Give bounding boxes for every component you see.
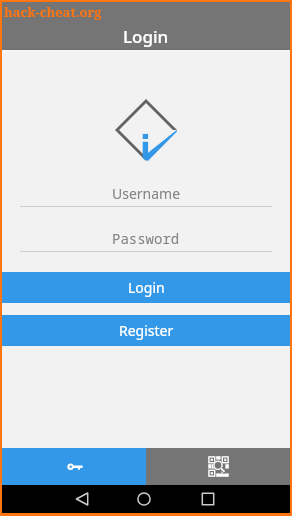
- button[interactable]: Home: [124, 485, 164, 513]
- staticText: Password: [112, 229, 180, 248]
- button[interactable]: Back: [62, 485, 102, 513]
- button[interactable]: Password: [20, 228, 272, 251]
- staticText: Username: [112, 184, 181, 203]
- button[interactable]: Recent apps: [188, 485, 228, 513]
- staticText: Login: [123, 25, 169, 48]
- button[interactable]: Login: [2, 272, 290, 303]
- button[interactable]: Register: [2, 315, 290, 346]
- staticText: hack-cheat.org: [4, 3, 102, 21]
- button[interactable]: Scan QR code: [146, 448, 290, 485]
- staticText: Register: [119, 321, 174, 340]
- button[interactable]: Key login: [2, 448, 146, 485]
- button[interactable]: Username: [20, 183, 272, 206]
- staticText: Login: [128, 278, 165, 297]
